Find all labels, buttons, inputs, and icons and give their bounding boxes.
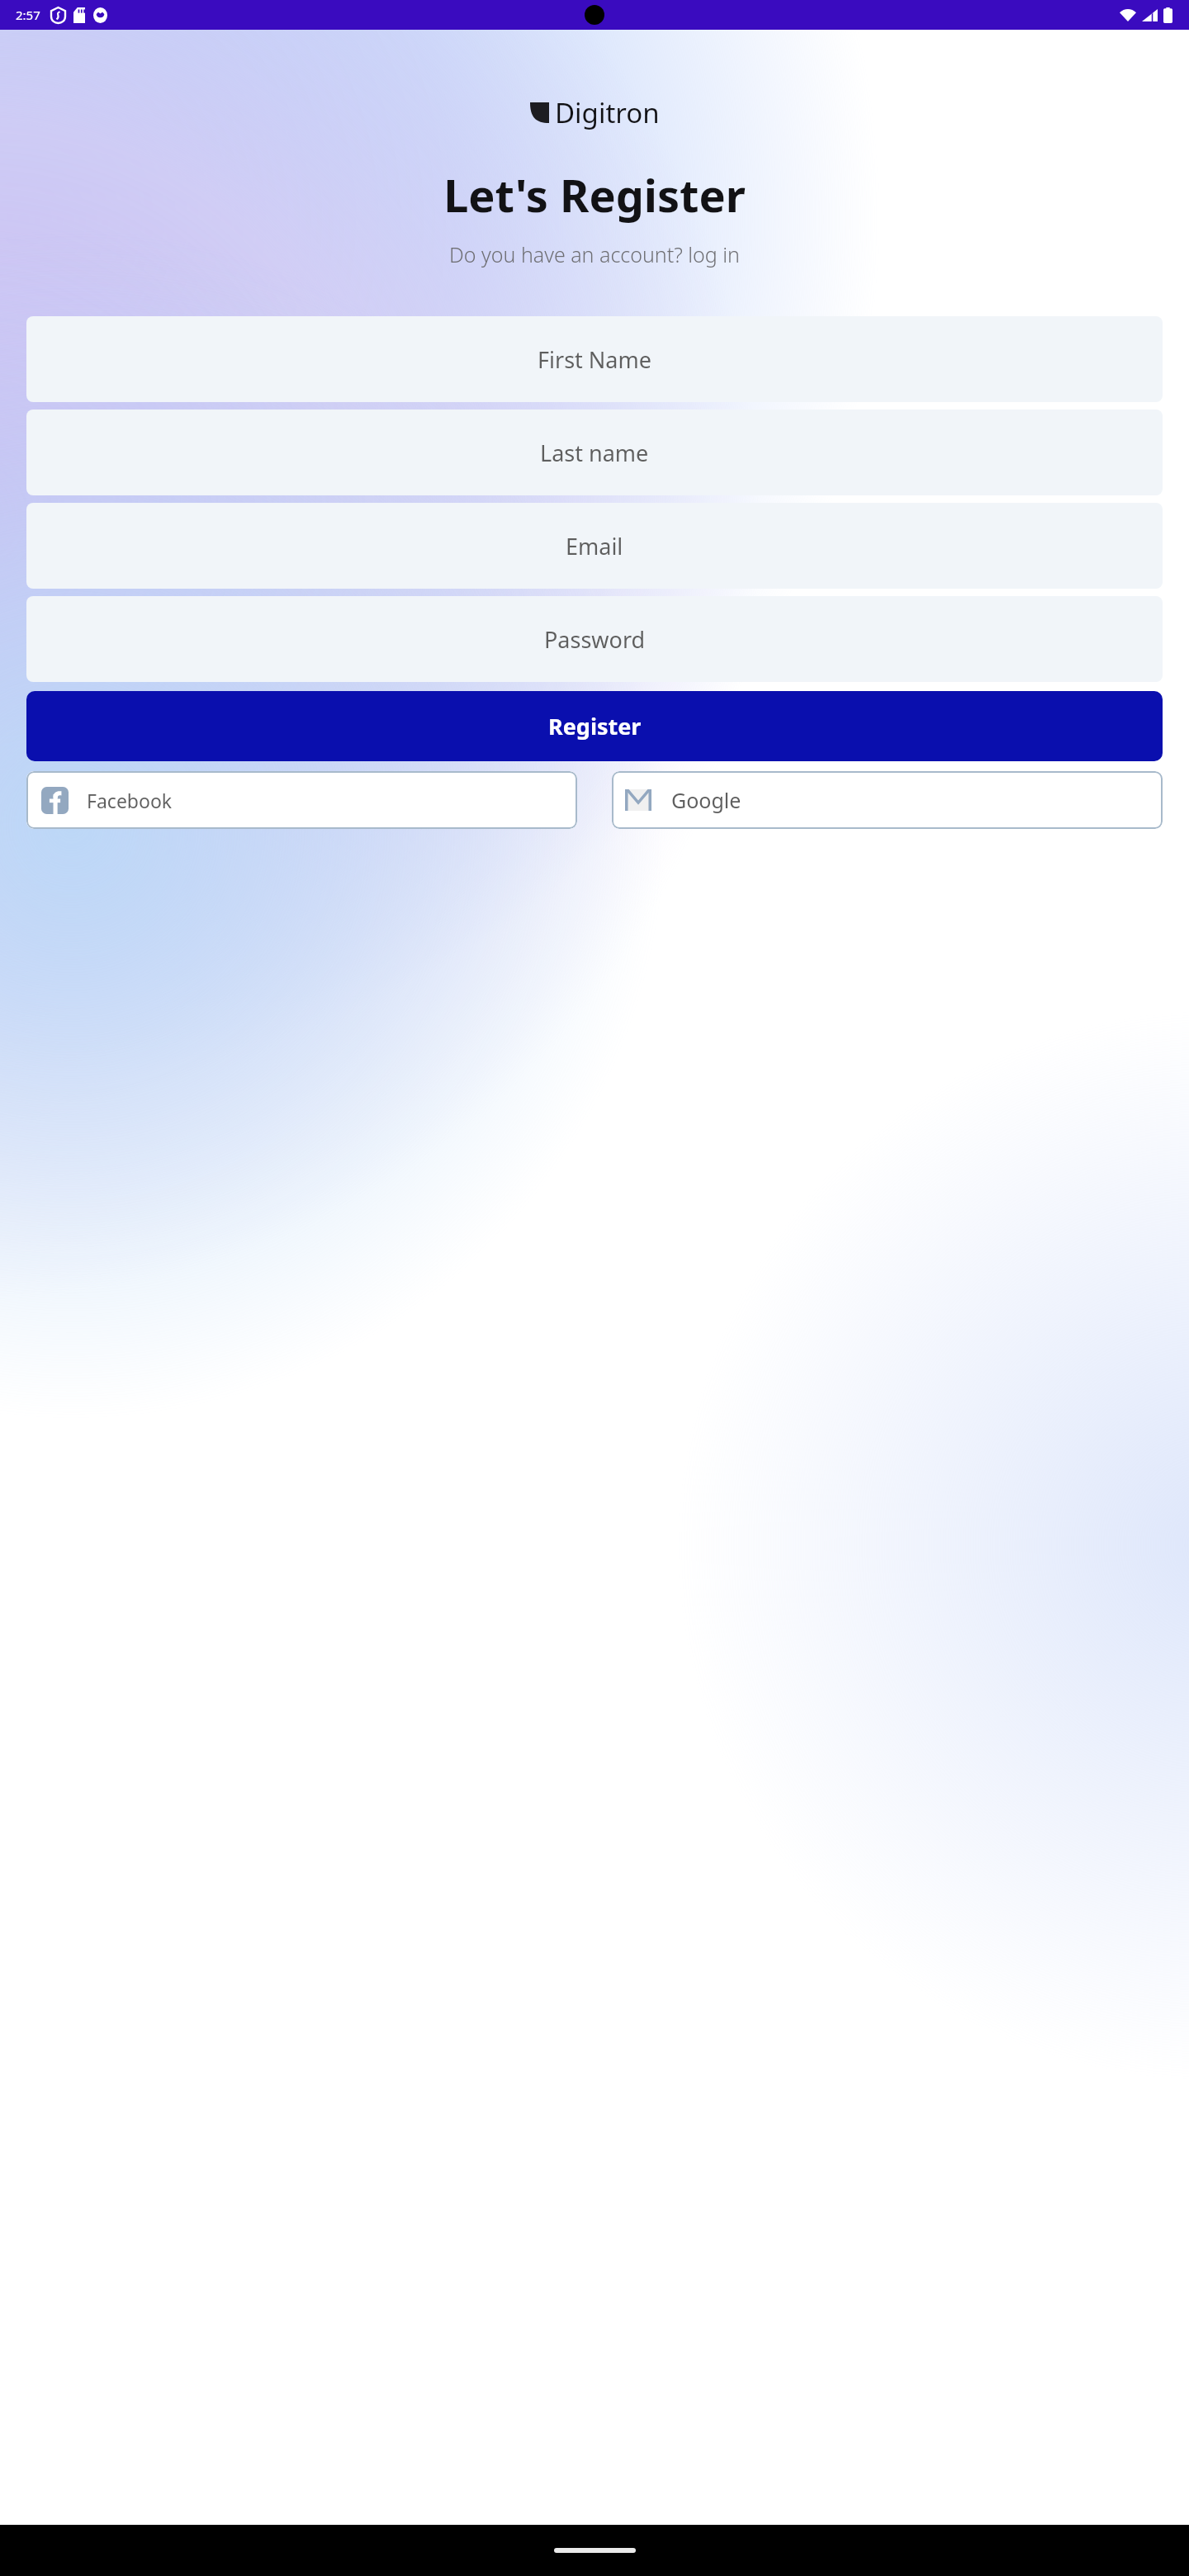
other: Facebook — [41, 787, 69, 814]
other: Google — [625, 789, 651, 811]
staticText: First Name — [538, 344, 651, 375]
staticText: Register — [548, 711, 642, 741]
staticText: Digitron — [555, 94, 660, 131]
staticText: 2:57 — [16, 7, 40, 23]
staticText: Password — [544, 624, 646, 655]
button[interactable]: Email — [26, 503, 1163, 589]
staticText: Last name — [540, 438, 649, 468]
button[interactable]: First Name — [26, 316, 1163, 402]
staticText: Google — [671, 786, 741, 814]
staticText: Email — [566, 531, 623, 561]
button[interactable]: Register — [26, 691, 1163, 761]
staticText: Facebook — [87, 788, 173, 813]
staticText: Let's Register — [443, 164, 746, 225]
button[interactable]: Facebook — [26, 771, 577, 829]
button[interactable]: Google — [612, 771, 1163, 829]
button[interactable]: Last name — [26, 410, 1163, 495]
button[interactable]: Do you have an account? log in — [449, 240, 740, 268]
button[interactable]: Password — [26, 596, 1163, 682]
